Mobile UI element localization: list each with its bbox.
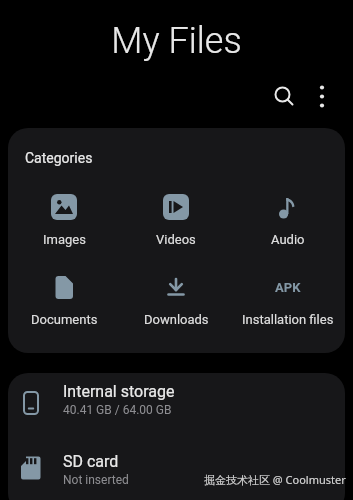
staticText: Downloads [144,312,209,327]
staticText: Videos [156,232,196,247]
staticText: Documents [31,312,98,327]
staticText: SD card [63,452,119,471]
staticText: Internal storage [63,382,175,401]
button[interactable] [268,80,300,112]
button[interactable]: Audio [232,193,344,247]
button[interactable] [8,373,345,442]
staticText: Installation files [242,312,334,327]
staticText: APK [275,280,301,295]
button[interactable] [8,442,345,500]
button[interactable]: Images [8,193,120,247]
staticText: Categories [25,150,93,166]
button[interactable]: Documents [8,273,120,327]
staticText: Images [43,232,86,247]
staticText: 掘金技术社区 @ Coolmuster [204,472,346,487]
staticText: Audio [271,232,305,247]
staticText: My Files [0,20,353,62]
button[interactable] [306,80,338,112]
staticText: 40.41 GB / 64.00 GB [63,403,172,417]
staticText: Not inserted [63,473,129,487]
button[interactable]: Videos [120,193,232,247]
button[interactable]: APK [232,273,344,327]
button[interactable]: Downloads [120,273,232,327]
